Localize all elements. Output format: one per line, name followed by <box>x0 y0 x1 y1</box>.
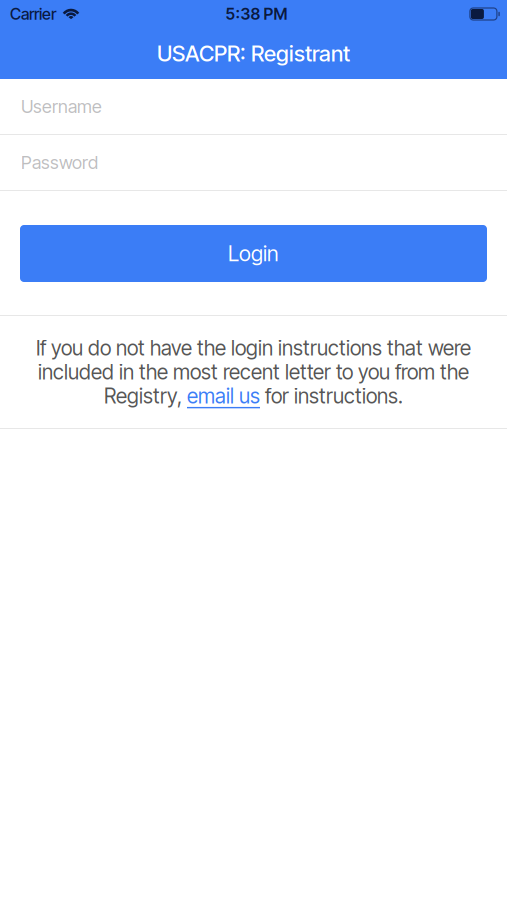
staticText: 5:38 PM <box>225 4 287 24</box>
staticText: Username <box>21 96 102 117</box>
staticText: USACPR: Registrant <box>157 40 350 67</box>
staticText: for instructions. <box>260 383 403 408</box>
staticText: Login <box>228 241 279 266</box>
button[interactable]: Login <box>20 225 487 282</box>
staticText: If you do not have the login instruction… <box>36 335 471 360</box>
button[interactable]: Password <box>0 135 507 190</box>
button[interactable]: email us <box>187 383 260 408</box>
staticText: Registry, <box>104 383 187 408</box>
button[interactable]: Username <box>0 79 507 134</box>
staticText: included in the most recent letter to yo… <box>38 359 469 384</box>
staticText: Carrier <box>10 4 56 24</box>
staticText: email us <box>187 383 260 408</box>
staticText: Password <box>21 152 98 173</box>
